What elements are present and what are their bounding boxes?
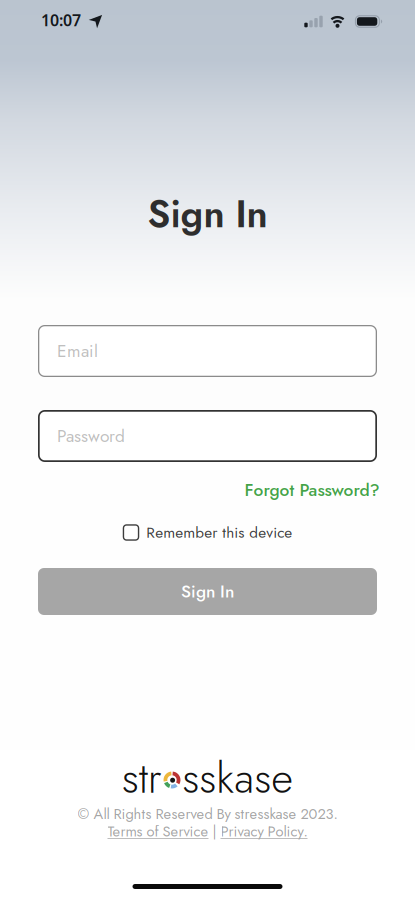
staticText: Sign In <box>181 579 234 604</box>
staticText: Terms of Service <box>107 821 208 842</box>
staticText: Forgot Password? <box>244 477 379 502</box>
button[interactable]: Password <box>38 410 377 462</box>
staticText: Privacy Policy. <box>220 821 307 842</box>
staticText: str <box>122 747 162 809</box>
staticText: Email <box>57 338 98 363</box>
staticText: | <box>212 821 216 842</box>
staticText: sskase <box>182 747 293 809</box>
staticText: © All Rights Reserved By stresskase 2023… <box>77 803 337 825</box>
staticText: Sign In <box>147 186 267 241</box>
button[interactable]: Terms of Service <box>107 821 208 842</box>
staticText: Remember this device <box>146 521 292 544</box>
button[interactable]: Email <box>38 325 377 377</box>
button[interactable]: Sign In <box>38 568 377 615</box>
staticText: Password <box>57 423 125 448</box>
button[interactable]: Forgot Password? <box>244 477 379 502</box>
button[interactable]: Remember this device <box>123 521 292 544</box>
button[interactable]: Privacy Policy. <box>220 821 307 842</box>
staticText: 10:07 <box>41 9 81 31</box>
